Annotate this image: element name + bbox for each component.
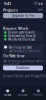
staticText: Weekly metrics recap	[8, 38, 35, 41]
staticText: Terms of Service and Privacy Policy	[3, 74, 46, 78]
staticText: Browse	[18, 93, 28, 97]
staticText: Profile	[33, 93, 43, 97]
staticText: Sync is up to date	[9, 46, 33, 49]
staticText: Home	[4, 93, 12, 97]
staticText: Projects	[3, 7, 18, 13]
staticText: ıll ᯾ ▮	[34, 2, 42, 5]
staticText: Upgrade to Pro	[11, 14, 34, 17]
button[interactable]: Weekly metrics recap	[2, 38, 43, 41]
button[interactable]: Upgrade to Pro	[3, 13, 43, 18]
staticText: Last checked 5 minutes ago	[9, 49, 40, 57]
button[interactable]: Continue	[3, 65, 43, 70]
button[interactable]: Onboarding flow v2	[2, 34, 43, 38]
staticText: Design system audit	[8, 31, 35, 34]
staticText: Recent Work	[3, 26, 28, 31]
staticText: 9:41	[4, 1, 11, 6]
button[interactable]: Home	[0, 89, 15, 97]
staticText: The Sixth Sense	[3, 54, 25, 58]
button[interactable]: Profile	[31, 89, 46, 97]
button[interactable]: Edit	[38, 8, 43, 12]
staticText: Edit	[38, 8, 43, 12]
staticText: Tap below to continue where you left off…	[3, 59, 45, 66]
button[interactable]: Design system audit	[2, 31, 43, 34]
button[interactable]: Browse	[15, 89, 31, 97]
staticText: Onboarding flow v2	[8, 34, 36, 38]
staticText: Continue	[16, 66, 30, 70]
